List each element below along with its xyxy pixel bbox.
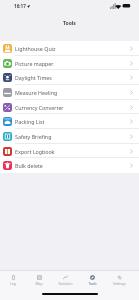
staticText: Tools xyxy=(88,281,97,286)
button[interactable]: Safety Briefing xyxy=(0,129,139,144)
button[interactable]: Tools xyxy=(79,271,106,290)
button[interactable]: Packing List xyxy=(0,114,139,129)
button[interactable]: Map xyxy=(26,271,52,290)
staticText: Currency Converter xyxy=(15,104,64,111)
staticText: Tools xyxy=(63,20,76,27)
staticText: Packing List xyxy=(15,118,45,125)
staticText: Safety Briefing xyxy=(15,133,52,140)
staticText: Daylight Times xyxy=(15,74,52,81)
staticText: Bulk delete xyxy=(15,162,43,169)
button[interactable]: Currency Converter xyxy=(0,100,139,114)
staticText: Export Logbook xyxy=(15,148,55,155)
staticText: Statistics xyxy=(58,281,73,286)
button[interactable]: Statistics xyxy=(52,271,79,290)
button[interactable]: Lighthouse Quiz xyxy=(0,41,139,56)
staticText: Map xyxy=(35,281,43,286)
button[interactable]: Log xyxy=(0,271,26,290)
button[interactable]: Daylight Times xyxy=(0,70,139,85)
staticText: Picture mapper xyxy=(15,60,54,67)
staticText: 16:17 xyxy=(14,3,26,9)
staticText: Settings xyxy=(113,281,126,286)
button[interactable]: Export Logbook xyxy=(0,144,139,158)
button[interactable]: Picture mapper xyxy=(0,56,139,70)
staticText: Measure Heeling xyxy=(15,89,58,96)
button[interactable]: Measure Heeling xyxy=(0,85,139,100)
button[interactable]: Bulk delete xyxy=(0,158,139,173)
button[interactable]: Settings xyxy=(106,271,133,290)
staticText: Lighthouse Quiz xyxy=(15,45,56,52)
staticText: Log xyxy=(10,281,16,286)
